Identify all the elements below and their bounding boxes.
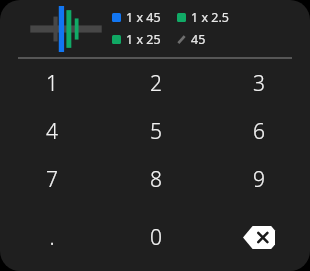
staticText: . [49, 223, 55, 252]
button[interactable]: Backspace [207, 203, 310, 271]
button[interactable]: 8 [104, 155, 207, 203]
button[interactable]: 7 [0, 155, 104, 203]
staticText: 3 [253, 69, 265, 98]
staticText: 1 [46, 69, 58, 98]
button[interactable]: 1 [0, 59, 104, 107]
staticText: 0 [150, 223, 162, 252]
staticText: 9 [253, 165, 265, 194]
staticText: 45 [191, 31, 206, 48]
button[interactable]: . [0, 203, 104, 271]
button[interactable]: 3 [207, 59, 310, 107]
button[interactable]: 9 [207, 155, 310, 203]
staticText: 6 [253, 117, 265, 146]
staticText: 4 [46, 117, 58, 146]
button[interactable]: 5 [104, 107, 207, 155]
button[interactable]: 4 [0, 107, 104, 155]
button[interactable]: 2 [104, 59, 207, 107]
staticText: 1 x 2.5 [191, 9, 229, 26]
staticText: 1 x 25 [126, 31, 161, 48]
button[interactable]: 6 [207, 107, 310, 155]
staticText: 5 [150, 117, 162, 146]
button[interactable]: 0 [104, 203, 207, 271]
staticText: 2 [150, 69, 162, 98]
staticText: 8 [150, 165, 162, 194]
staticText: 7 [46, 165, 58, 194]
staticText: 1 x 45 [126, 9, 161, 26]
